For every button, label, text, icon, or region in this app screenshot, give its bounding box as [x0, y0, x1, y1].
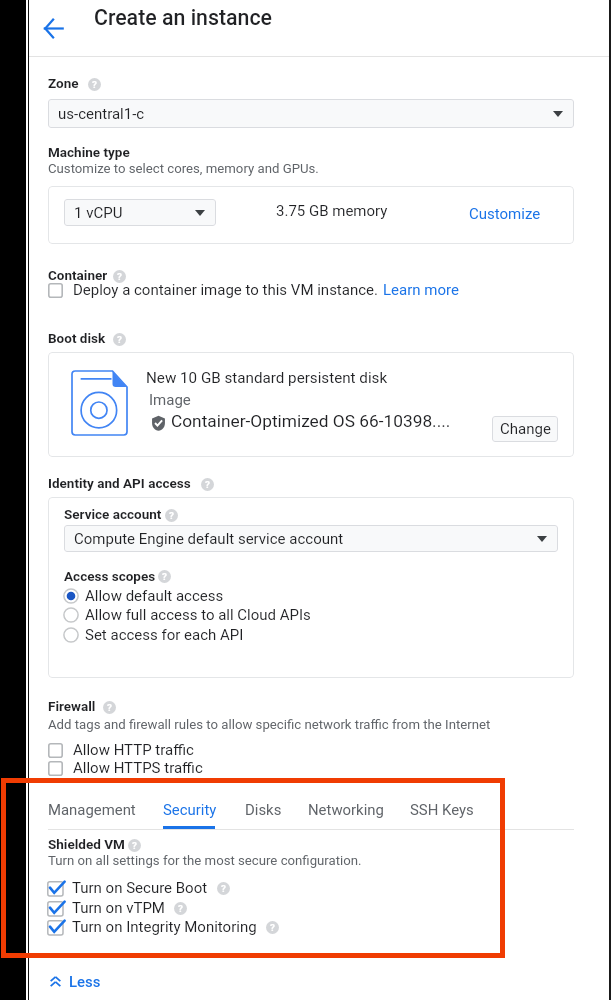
button[interactable]: Networking [295, 798, 397, 829]
button[interactable]: Security [151, 798, 229, 829]
button[interactable]: Back [34, 9, 73, 48]
button[interactable]: Turn on Secure Boot [47, 879, 230, 897]
staticText: 3.75 GB memory [276, 202, 388, 220]
staticText: Learn more [383, 281, 459, 299]
staticText: ? [169, 510, 174, 522]
staticText: Management [48, 801, 136, 818]
button[interactable]: SSH Keys [398, 798, 486, 829]
staticText: Disks [245, 801, 282, 818]
button[interactable]: Help [128, 839, 141, 852]
staticText: Identity and API access [48, 475, 191, 491]
staticText: Change [500, 420, 551, 438]
staticText: ? [107, 702, 112, 714]
staticText: Boot disk [48, 330, 106, 346]
button[interactable]: Help [103, 701, 116, 714]
staticText: Allow HTTPS traffic [73, 759, 203, 777]
staticText: Deploy a container image to this VM inst… [73, 281, 378, 299]
button[interactable]: Help [217, 882, 230, 895]
staticText: Service account [64, 506, 162, 522]
button[interactable]: Help [201, 478, 214, 491]
button[interactable]: Change [492, 416, 558, 442]
staticText: Turn on Integrity Monitoring [72, 918, 257, 936]
button[interactable]: Allow full access to all Cloud APIs [63, 606, 311, 624]
staticText: ? [221, 883, 226, 895]
staticText: Set access for each API [85, 626, 244, 644]
button[interactable]: Help [165, 509, 178, 522]
button[interactable]: Disks [233, 798, 293, 829]
button[interactable]: Less [46, 969, 105, 994]
button[interactable]: Turn on Integrity Monitoring [47, 918, 279, 936]
staticText: Allow HTTP traffic [73, 741, 194, 759]
staticText: ? [178, 903, 183, 915]
button[interactable]: us-central1-c [48, 99, 574, 128]
button[interactable]: Help [174, 902, 187, 915]
staticText: Turn on Secure Boot [72, 879, 208, 897]
staticText: Compute Engine default service account [74, 530, 344, 548]
staticText: New 10 GB standard persistent disk [146, 369, 388, 387]
staticText: ? [117, 271, 122, 283]
staticText: Security [163, 801, 217, 818]
staticText: ? [270, 922, 275, 934]
button[interactable]: Help [158, 570, 171, 583]
staticText: Firewall [48, 698, 96, 714]
button[interactable]: Management [36, 798, 147, 829]
staticText: Zone [48, 75, 79, 91]
staticText: SSH Keys [410, 801, 474, 818]
button[interactable]: Deploy a container image to this VM inst… [48, 281, 459, 299]
staticText: Shielded VM [48, 836, 125, 852]
staticText: Networking [308, 801, 384, 818]
staticText: Access scopes [64, 568, 156, 584]
staticText: ? [162, 571, 167, 583]
button[interactable]: Customize [465, 200, 545, 228]
button[interactable]: Help [88, 78, 101, 91]
staticText: us-central1-c [58, 105, 145, 123]
staticText: Customize to select cores, memory and GP… [48, 161, 319, 176]
staticText: Add tags and firewall rules to allow spe… [48, 717, 491, 732]
staticText: Allow full access to all Cloud APIs [85, 606, 311, 624]
staticText: Container [48, 267, 108, 283]
button[interactable]: Allow HTTP traffic [48, 741, 194, 759]
button[interactable]: Help [266, 921, 279, 934]
button[interactable]: Compute Engine default service account [64, 525, 558, 552]
button[interactable]: Turn on vTPM [47, 899, 187, 917]
staticText: Customize [469, 205, 541, 223]
staticText: ? [117, 334, 122, 346]
staticText: ? [132, 840, 137, 852]
staticText: Container-Optimized OS 66-10398.... [171, 411, 451, 431]
button[interactable]: 1 vCPU [64, 199, 216, 226]
staticText: Image [149, 391, 191, 409]
button[interactable]: Help [113, 333, 126, 346]
button[interactable]: Allow HTTPS traffic [48, 759, 203, 777]
staticText: 1 vCPU [74, 204, 123, 222]
staticText: Create an instance [94, 5, 273, 30]
staticText: Allow default access [85, 587, 224, 605]
button[interactable]: Help [113, 270, 126, 283]
staticText: ? [205, 479, 210, 491]
button[interactable]: Allow default access [63, 587, 224, 605]
staticText: ? [92, 79, 97, 91]
button[interactable]: Set access for each API [63, 626, 244, 644]
staticText: Less [69, 973, 101, 990]
staticText: Turn on all settings for the most secure… [48, 853, 362, 868]
staticText: Machine type [48, 144, 130, 160]
staticText: Turn on vTPM [72, 899, 165, 917]
